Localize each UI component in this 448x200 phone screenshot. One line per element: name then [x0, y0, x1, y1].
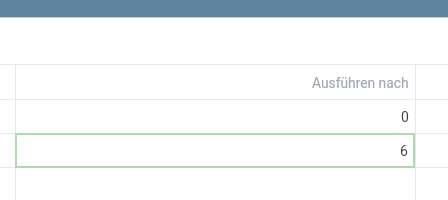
button[interactable]: Column header Ausführen nach	[16, 65, 416, 100]
staticText: 6	[400, 143, 408, 159]
button[interactable]: Ausführen nach 6, selected	[15, 133, 415, 168]
button[interactable]: Next column row 1	[416, 100, 448, 134]
button[interactable]: Next column header	[416, 65, 448, 100]
button[interactable]: Row header	[0, 134, 15, 168]
button[interactable]: Ausführen nach 0	[16, 100, 416, 134]
button[interactable]: Row header	[0, 100, 15, 134]
button[interactable]: Row header	[0, 65, 15, 100]
button[interactable]: Next column row 2	[416, 134, 448, 168]
staticText: 0	[401, 109, 409, 125]
staticText: Ausführen nach	[312, 75, 409, 91]
